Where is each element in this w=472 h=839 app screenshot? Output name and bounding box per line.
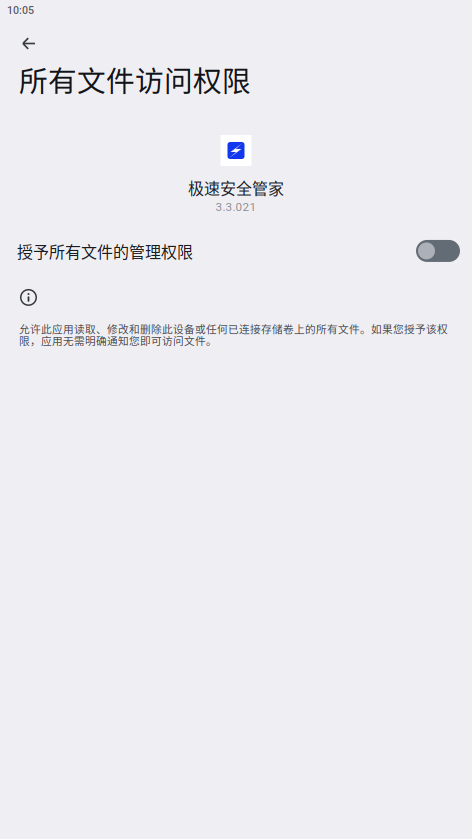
staticText: 极速安全管家 bbox=[188, 176, 284, 199]
button[interactable]: 授予所有文件的管理权限 bbox=[0, 229, 472, 273]
staticText: 3.3.021 bbox=[215, 200, 256, 214]
staticText: 授予所有文件的管理权限 bbox=[17, 239, 193, 262]
staticText: 允许此应用读取、修改和删除此设备或任何已连接存储卷上的所有文件。如果您授予该权限… bbox=[19, 323, 448, 346]
staticText: 10:05 bbox=[7, 4, 34, 16]
staticText: 所有文件访问权限 bbox=[19, 58, 251, 100]
button[interactable]: Back bbox=[22, 28, 68, 58]
